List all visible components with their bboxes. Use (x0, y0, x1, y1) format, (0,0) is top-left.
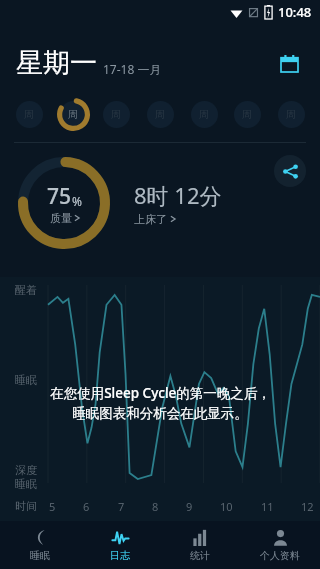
staticText: 10 (220, 499, 233, 514)
button[interactable]: 周 (187, 97, 221, 131)
staticText: 8时 12分 (134, 180, 222, 210)
button[interactable]: 周 (143, 97, 177, 131)
staticText: 8 (152, 499, 159, 514)
staticText: 7 (118, 499, 125, 514)
staticText: 深度 (15, 463, 37, 477)
staticText: 醒着 (15, 283, 37, 297)
staticText: 时间 (15, 499, 37, 513)
staticText: 周 (155, 108, 165, 121)
staticText: 在您使用Sleep Cycle的第一晚之后， (50, 384, 271, 402)
staticText: 个人资料 (260, 549, 300, 562)
staticText: 星期一 (16, 46, 97, 80)
staticText: 睡眠图表和分析会在此显示。 (72, 405, 248, 422)
staticText: 周 (286, 108, 296, 121)
button[interactable]: 周 (99, 97, 133, 131)
staticText: 日志 (110, 549, 130, 562)
staticText: 周 (111, 108, 121, 121)
staticText: 11 (261, 499, 274, 514)
button[interactable]: 75 (18, 157, 110, 249)
staticText: 75 (47, 182, 72, 211)
staticText: 6 (83, 499, 90, 514)
button[interactable]: Share (274, 155, 306, 187)
staticText: 10:48 (278, 3, 312, 21)
staticText: 睡眠 (15, 373, 37, 387)
staticText: 睡眠 (15, 477, 37, 491)
button[interactable]: 个人资料 (240, 521, 320, 569)
staticText: 周 (68, 108, 78, 121)
staticText: 统计 (190, 549, 210, 562)
staticText: 9 (186, 499, 193, 514)
staticText: 质量 (50, 211, 72, 225)
button[interactable]: 统计 (160, 521, 240, 569)
staticText: 12 (301, 499, 314, 514)
button[interactable]: 8时 12分 (134, 180, 222, 226)
staticText: 周 (242, 108, 252, 121)
button[interactable]: 睡眠 (0, 521, 80, 569)
button[interactable]: 周 (230, 97, 264, 131)
staticText: 5 (49, 499, 56, 514)
button[interactable]: 日志 (80, 521, 160, 569)
button[interactable]: 周 (56, 97, 90, 131)
button[interactable]: 周 (274, 97, 308, 131)
button[interactable]: 周 (12, 97, 46, 131)
staticText: 上床了 (134, 212, 167, 226)
staticText: % (72, 193, 82, 209)
staticText: 睡眠 (30, 549, 50, 562)
button[interactable]: Calendar (272, 46, 306, 80)
staticText: 周 (199, 108, 209, 121)
staticText: 17-18 一月 (103, 61, 162, 77)
staticText: 周 (24, 108, 34, 121)
